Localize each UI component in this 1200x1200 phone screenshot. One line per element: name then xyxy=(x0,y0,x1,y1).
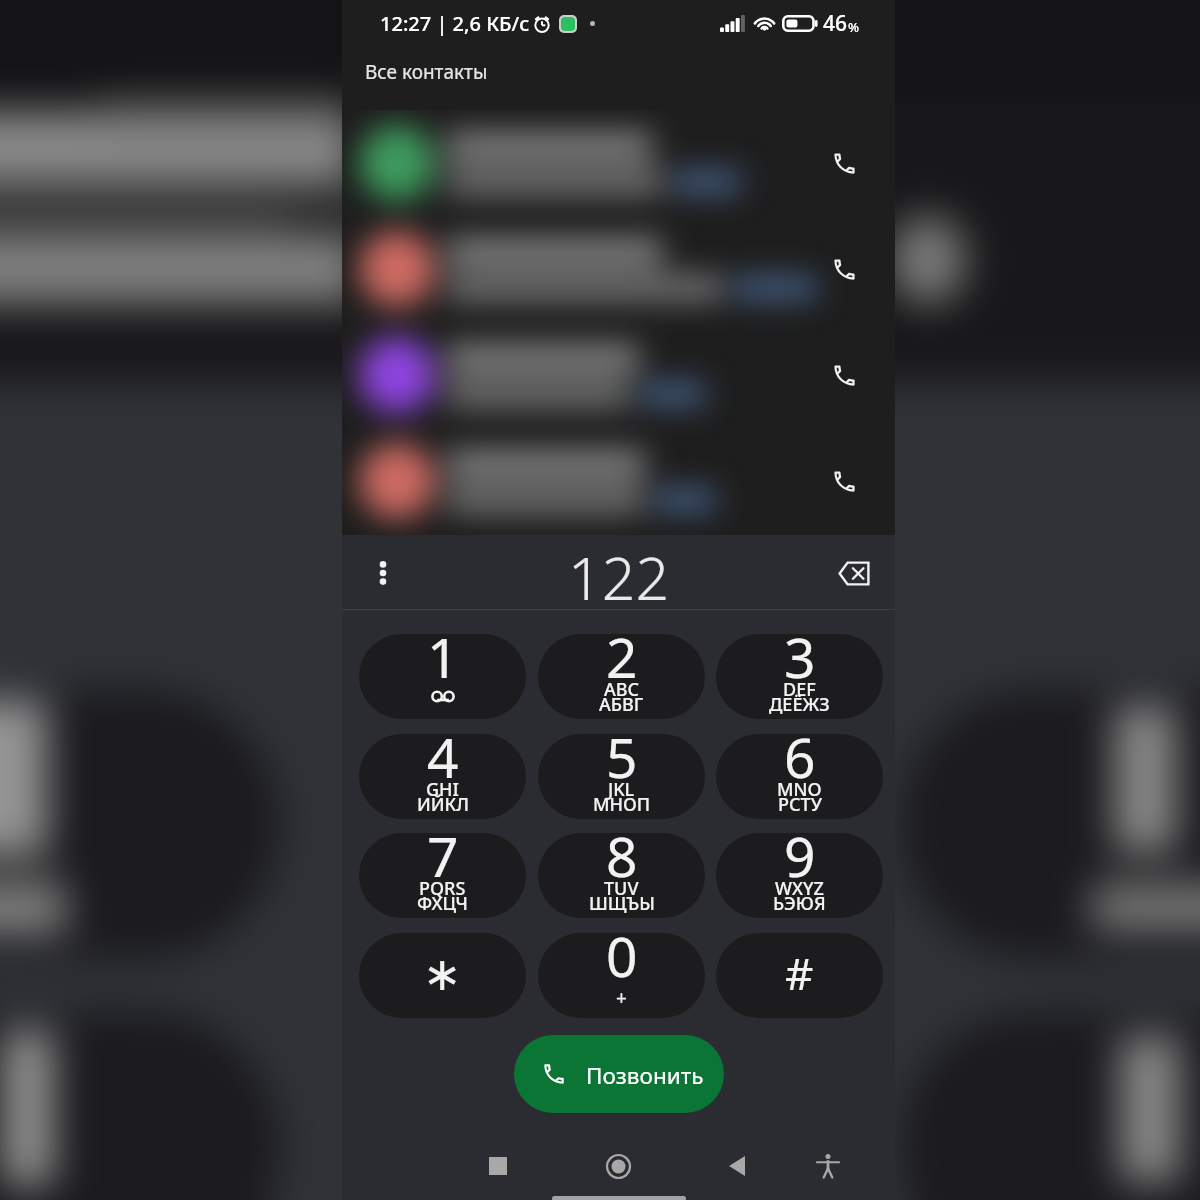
staticText: ЬЭЮЯ xyxy=(773,891,826,916)
staticText: PQRS xyxy=(419,876,466,901)
button[interactable]: More options xyxy=(364,554,402,592)
staticText: % xyxy=(848,18,860,36)
staticText: ∗ xyxy=(423,947,462,1001)
staticText: ФХЦЧ xyxy=(417,891,468,916)
button[interactable]: Dial 8 xyxy=(538,833,705,918)
button[interactable] xyxy=(359,216,895,322)
button[interactable]: Home xyxy=(594,1142,642,1190)
staticText: # xyxy=(785,943,814,1003)
staticText: ДЕЁЖЗ xyxy=(769,692,830,717)
staticText: Все контакты xyxy=(365,59,488,85)
staticText: 122 xyxy=(568,537,670,612)
button[interactable]: Back xyxy=(713,1142,761,1190)
button[interactable]: Dial 1 xyxy=(359,634,526,719)
staticText: АБВГ xyxy=(599,692,644,717)
staticText: РСТУ xyxy=(778,792,822,817)
button[interactable] xyxy=(359,428,895,534)
staticText: ШЩЪЫ xyxy=(589,891,655,916)
button[interactable] xyxy=(359,322,895,428)
staticText: JKL xyxy=(608,777,635,802)
staticText: MNO xyxy=(777,777,822,802)
button[interactable]: Recents xyxy=(474,1142,522,1190)
button[interactable]: Call contact xyxy=(342,428,895,534)
staticText: 6 xyxy=(784,719,816,794)
staticText: 4 xyxy=(427,719,459,794)
button[interactable] xyxy=(359,110,895,216)
staticText: DEF xyxy=(783,677,816,702)
staticText: 0 xyxy=(606,918,638,993)
button[interactable]: Call contact xyxy=(342,110,895,216)
staticText: ABC xyxy=(604,677,639,702)
button[interactable]: Dial 9 xyxy=(716,833,883,918)
staticText: Позвонить xyxy=(586,1060,704,1091)
staticText: 2 xyxy=(606,619,638,694)
staticText: МНОП xyxy=(593,792,651,817)
staticText: 9 xyxy=(784,818,816,893)
button[interactable]: Call contact xyxy=(342,322,895,428)
staticText: 1 xyxy=(427,619,459,694)
staticText: + xyxy=(616,985,627,1011)
button[interactable]: Backspace xyxy=(832,551,876,595)
staticText: 46 xyxy=(823,9,848,38)
staticText: 12:27 | 2,6 КБ/с xyxy=(380,10,530,37)
staticText: GHI xyxy=(426,777,459,802)
button[interactable]: Dial # xyxy=(716,933,883,1018)
staticText: 7 xyxy=(427,818,459,893)
button[interactable]: Call contact xyxy=(342,216,895,322)
staticText: 8 xyxy=(606,818,638,893)
staticText: 3 xyxy=(784,619,816,694)
button[interactable]: Dial * xyxy=(359,933,526,1018)
button[interactable]: Dial 4 xyxy=(359,734,526,819)
button[interactable]: Accessibility xyxy=(804,1142,852,1190)
button[interactable]: Dial 3 xyxy=(716,634,883,719)
button[interactable]: Dial 0 xyxy=(538,933,705,1018)
staticText: 5 xyxy=(606,719,638,794)
staticText: TUV xyxy=(604,876,639,901)
staticText: ИЙКЛ xyxy=(417,792,469,817)
button[interactable]: Dial 6 xyxy=(716,734,883,819)
button[interactable]: Позвонить xyxy=(514,1035,724,1113)
staticText: WXYZ xyxy=(775,876,824,901)
button[interactable]: Dial 2 xyxy=(538,634,705,719)
button[interactable]: Dial 5 xyxy=(538,734,705,819)
button[interactable]: Dial 7 xyxy=(359,833,526,918)
